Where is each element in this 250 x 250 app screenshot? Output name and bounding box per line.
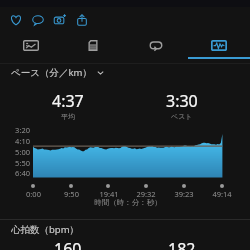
button[interactable]: ペース（分／km） [8,64,105,80]
staticText: 160 [54,238,82,250]
staticText: 6:40 [15,168,30,178]
button[interactable]: Charts [187,31,250,59]
staticText: 5:00 [15,147,30,157]
button[interactable]: Like [5,9,27,31]
staticText: 平均 [61,112,75,121]
staticText: 29:32 [136,189,156,199]
staticText: 49:14 [212,189,232,199]
button[interactable]: Details [62,31,124,59]
staticText: 39:23 [174,189,194,199]
staticText: 5:50 [15,158,30,168]
staticText: 4:10 [15,136,30,146]
staticText: 3:20 [15,125,30,135]
staticText: 9:50 [64,189,79,199]
button[interactable]: Laps [124,31,187,59]
button[interactable]: Add photo [49,9,71,31]
staticText: ペース（分／km） [11,66,92,79]
button[interactable]: Share [71,9,93,31]
staticText: 3:30 [166,90,198,112]
button[interactable]: Comment [27,9,49,31]
staticText: 182 [168,238,196,250]
staticText: 0:00 [26,189,41,199]
staticText: 時間（時：分：秒） [28,198,228,207]
button[interactable]: Map [0,31,62,59]
staticText: ベスト [171,112,193,121]
staticText: 4:37 [52,90,84,112]
staticText: 19:41 [99,189,119,199]
staticText: 心拍数（bpm） [11,223,80,236]
